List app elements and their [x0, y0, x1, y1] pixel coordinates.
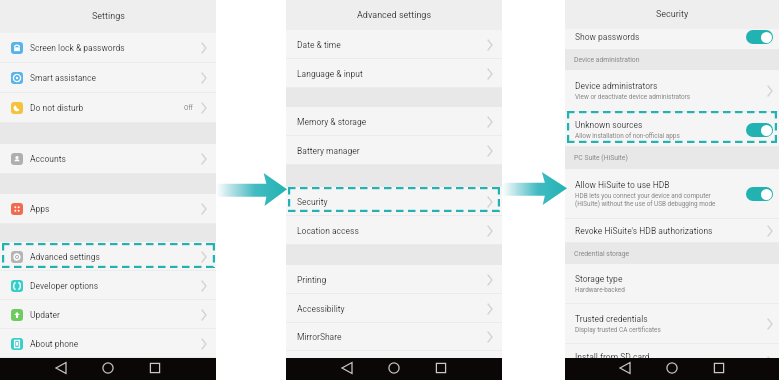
button[interactable]: Revoke HiSuite's HDB authorizations — [565, 219, 779, 243]
button[interactable]: Advanced settings — [0, 242, 216, 271]
staticText: Install certificates from SD card — [575, 364, 665, 372]
button[interactable]: Toggle switch — [746, 187, 773, 201]
staticText: Trusted credentials — [575, 314, 648, 324]
button[interactable]: Toggle switch — [746, 123, 773, 137]
button[interactable]: About phone — [0, 329, 216, 358]
staticText: MirrorShare — [297, 332, 342, 342]
button[interactable]: Recent apps — [712, 361, 726, 375]
staticText: HDB lets you connect your device and com… — [575, 192, 711, 200]
staticText: Show passwords — [575, 32, 640, 42]
button[interactable]: Device administrators — [565, 70, 779, 112]
staticText: Location access — [297, 226, 359, 236]
button[interactable]: Home — [101, 361, 115, 375]
staticText: Smart assistance — [30, 73, 97, 83]
staticText: Apps — [30, 204, 50, 214]
button[interactable]: Screen lock & passwords — [0, 33, 216, 63]
staticText: Printing — [297, 275, 327, 285]
staticText: Language & input — [297, 69, 363, 79]
button[interactable]: Trusted credentials — [565, 304, 779, 344]
button[interactable]: Battery manager — [286, 136, 502, 165]
staticText: Battery manager — [297, 146, 360, 156]
button[interactable]: Security — [286, 187, 502, 216]
staticText: Display trusted CA certificates — [575, 326, 661, 334]
staticText: Storage type — [575, 274, 623, 284]
button[interactable]: Unknown sources — [565, 112, 779, 147]
staticText: Accessibility — [297, 304, 345, 314]
staticText: Credential storage — [574, 250, 630, 258]
staticText: View or deactivate device administrators — [575, 93, 691, 101]
staticText: Unknown sources — [575, 120, 643, 130]
staticText: Settings — [92, 11, 125, 22]
button[interactable]: Back — [340, 361, 354, 375]
button[interactable]: Memory & storage — [286, 107, 502, 136]
button[interactable]: Location access — [286, 216, 502, 245]
button[interactable]: Back — [618, 361, 632, 375]
staticText: Revoke HiSuite's HDB authorizations — [575, 226, 713, 236]
button[interactable]: Show passwords — [565, 29, 779, 50]
button[interactable]: Smart assistance — [0, 63, 216, 93]
button[interactable]: Toggle switch — [746, 30, 773, 44]
staticText: Do not disturb — [30, 103, 84, 113]
button[interactable]: Storage type — [565, 264, 779, 304]
staticText: PC Suite (HiSuite) — [574, 154, 628, 162]
staticText: About phone — [30, 339, 79, 349]
staticText: Security — [297, 197, 328, 207]
staticText: Memory & storage — [297, 117, 367, 127]
staticText: Developer options — [30, 281, 99, 291]
button[interactable]: MirrorShare — [286, 323, 502, 351]
staticText: (HiSuite) without the use of USB debuggi… — [575, 200, 716, 208]
staticText: Off — [184, 104, 193, 112]
staticText: Updater — [30, 310, 60, 320]
button[interactable]: Apps — [0, 194, 216, 224]
staticText: Allow installation of non-official apps — [575, 132, 680, 140]
staticText: Accounts — [30, 154, 66, 164]
button[interactable]: Accounts — [0, 144, 216, 174]
button[interactable]: Do not disturb — [0, 93, 216, 123]
staticText: Advanced settings — [30, 252, 100, 262]
button[interactable]: Home — [665, 361, 679, 375]
staticText: Device administrators — [575, 81, 658, 91]
button[interactable]: Date & time — [286, 30, 502, 59]
button[interactable]: Accessibility — [286, 294, 502, 323]
button[interactable]: Language & input — [286, 59, 502, 88]
staticText: Allow HiSuite to use HDB — [575, 180, 670, 190]
button[interactable]: Back — [54, 361, 68, 375]
button[interactable]: Recent apps — [148, 361, 162, 375]
staticText: Screen lock & passwords — [30, 43, 125, 53]
button[interactable]: Allow HiSuite to use HDB — [565, 169, 779, 219]
button[interactable]: Install from SD card — [565, 344, 779, 380]
staticText: Install from SD card — [575, 352, 650, 362]
staticText: Date & time — [297, 40, 341, 50]
staticText: Security — [656, 9, 689, 20]
button[interactable]: Developer options — [0, 271, 216, 300]
button[interactable]: Home — [387, 361, 401, 375]
staticText: Hardware-backed — [575, 286, 625, 294]
button[interactable]: Printing — [286, 265, 502, 294]
button[interactable]: Updater — [0, 300, 216, 329]
staticText: Advanced settings — [357, 10, 432, 21]
staticText: Device administration — [574, 56, 640, 64]
button[interactable]: Recent apps — [434, 361, 448, 375]
